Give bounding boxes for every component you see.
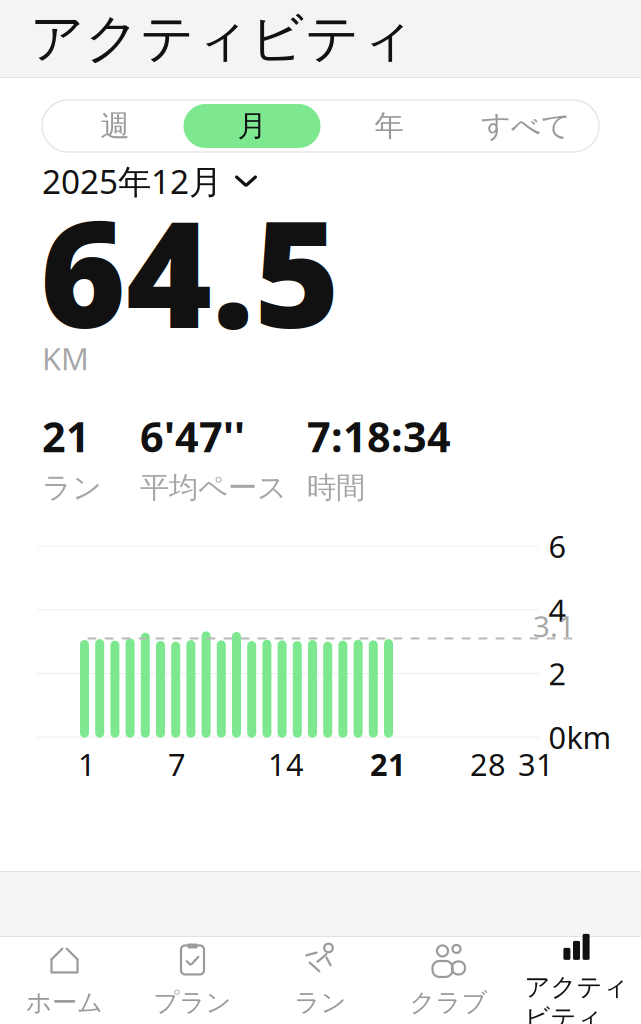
button[interactable]: ホーム [0, 937, 128, 1024]
staticText: 週 [100, 108, 129, 144]
button[interactable]: 2025年12月 [0, 152, 641, 210]
staticText: 21 [42, 409, 90, 464]
staticText: 時間 [307, 470, 365, 506]
staticText: 月 [237, 108, 266, 144]
staticText: 64.5 [40, 174, 340, 368]
button[interactable]: 週 [46, 104, 183, 148]
staticText: 7:18:34 [307, 409, 451, 464]
button[interactable]: すべて [457, 104, 594, 148]
staticText: 7 [168, 744, 186, 784]
staticText: 28 [470, 744, 506, 784]
staticText: 21 [370, 744, 406, 784]
staticText: KM [42, 338, 89, 379]
button[interactable]: プラン [128, 937, 256, 1024]
staticText: 31 [518, 744, 554, 784]
staticText: プラン [153, 987, 231, 1018]
staticText: 4 [548, 589, 566, 630]
button[interactable]: 月 [183, 104, 320, 148]
button[interactable]: アクティビティ [512, 937, 640, 1024]
staticText: 1 [78, 744, 96, 784]
staticText: ホーム [26, 987, 103, 1018]
button[interactable]: クラブ [384, 937, 512, 1024]
staticText: ラン [294, 987, 346, 1018]
staticText: クラブ [409, 987, 487, 1018]
staticText: 2 [548, 653, 566, 694]
staticText: アクティビティ [524, 971, 628, 1024]
staticText: 6 [548, 526, 566, 566]
staticText: 0km [548, 717, 611, 757]
staticText: 2025年12月 [42, 159, 222, 203]
staticText: ラン [42, 470, 102, 506]
button[interactable]: 年 [320, 104, 457, 148]
staticText: 14 [268, 744, 304, 784]
staticText: アクティビティ [30, 6, 415, 71]
staticText: 平均ペース [140, 470, 287, 506]
staticText: 年 [374, 108, 403, 144]
staticText: 6'47'' [140, 409, 245, 464]
staticText: すべて [481, 108, 571, 144]
button[interactable]: ラン [256, 937, 384, 1024]
staticText: 3.1 [533, 606, 575, 645]
